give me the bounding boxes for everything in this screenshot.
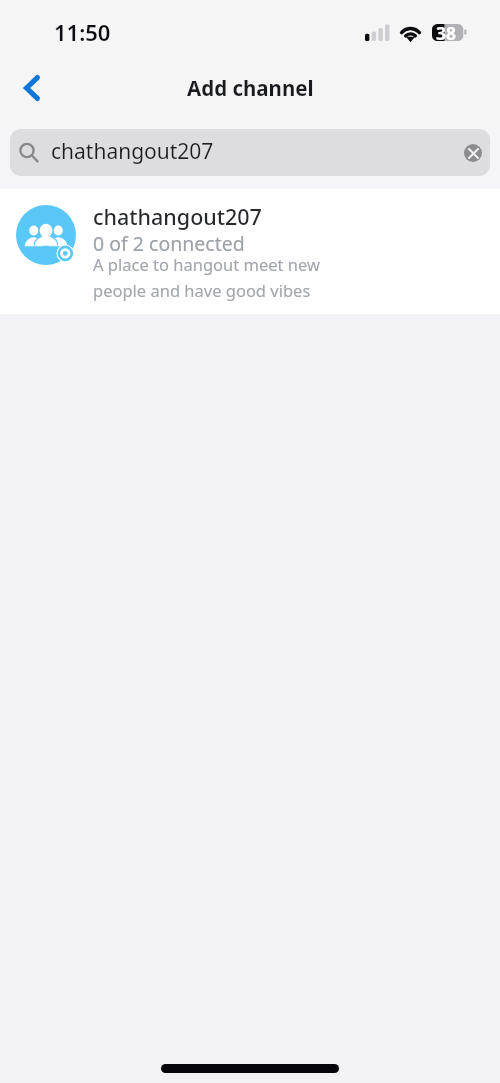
staticText: chathangout207 [51, 137, 464, 166]
staticText: 38 [436, 21, 457, 45]
staticText: chathangout207 [93, 202, 262, 231]
button[interactable]: Clear search [464, 144, 482, 162]
staticText: A place to hangout meet new [93, 253, 320, 275]
button[interactable]: chathangout207 [10, 129, 490, 176]
staticText: people and have good vibes [93, 279, 311, 301]
staticText: Add channel [187, 74, 314, 102]
button[interactable]: Back [0, 61, 58, 119]
staticText: 0 of 2 connected [93, 230, 245, 257]
staticText: 11:50 [54, 17, 111, 47]
button[interactable]: chathangout207 [0, 189, 500, 314]
